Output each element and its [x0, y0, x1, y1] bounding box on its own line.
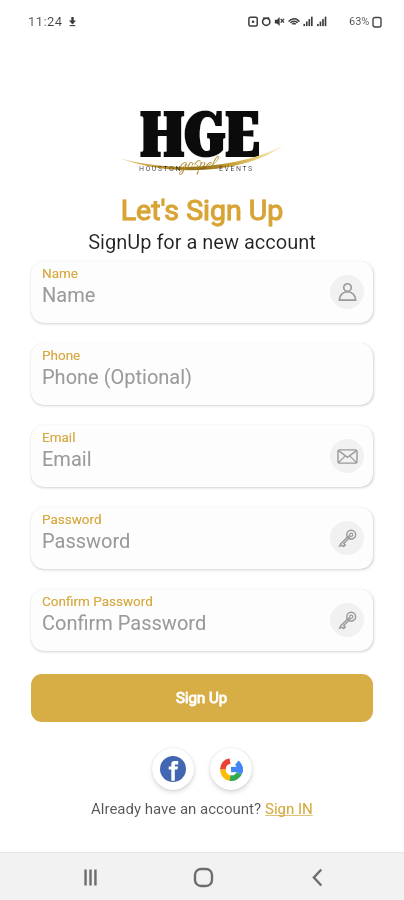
button[interactable]: Email — [31, 425, 373, 487]
staticText: EVENTS — [219, 165, 254, 173]
staticText: Name — [42, 265, 78, 281]
button[interactable]: Sign up with Facebook — [152, 748, 194, 790]
staticText: Email — [42, 429, 76, 445]
staticText: HGE — [139, 97, 259, 167]
staticText: Name — [42, 283, 96, 306]
staticText: HOUSTON — [139, 165, 182, 173]
button[interactable]: Phone — [31, 343, 373, 405]
button[interactable]: Password — [31, 507, 373, 569]
staticText: SignUp for a new account — [0, 230, 404, 253]
staticText: Password — [42, 529, 131, 552]
staticText: Password — [42, 511, 102, 527]
button[interactable]: Sign Up — [31, 674, 373, 722]
button[interactable]: Name — [31, 261, 373, 323]
button[interactable]: Home — [177, 854, 229, 900]
staticText: Phone — [42, 347, 81, 363]
staticText: Confirm Password — [42, 593, 153, 609]
button[interactable]: Confirm Password — [31, 589, 373, 651]
staticText: 11:24 — [28, 14, 63, 29]
staticText: Sign IN — [265, 800, 313, 818]
staticText: Sign Up — [176, 689, 228, 707]
staticText: Let's Sign Up — [0, 194, 404, 227]
button[interactable]: Sign IN — [265, 800, 313, 818]
button[interactable]: Sign up with Google — [210, 748, 252, 790]
button[interactable]: Recents — [64, 854, 116, 900]
button[interactable]: Back — [291, 854, 343, 900]
staticText: Already have an account? — [91, 800, 265, 818]
staticText: Phone (Optional) — [42, 365, 193, 388]
staticText: Confirm Password — [42, 611, 207, 634]
staticText: Email — [42, 447, 92, 470]
staticText: 63% — [349, 15, 370, 28]
staticText: gospel — [180, 154, 216, 177]
